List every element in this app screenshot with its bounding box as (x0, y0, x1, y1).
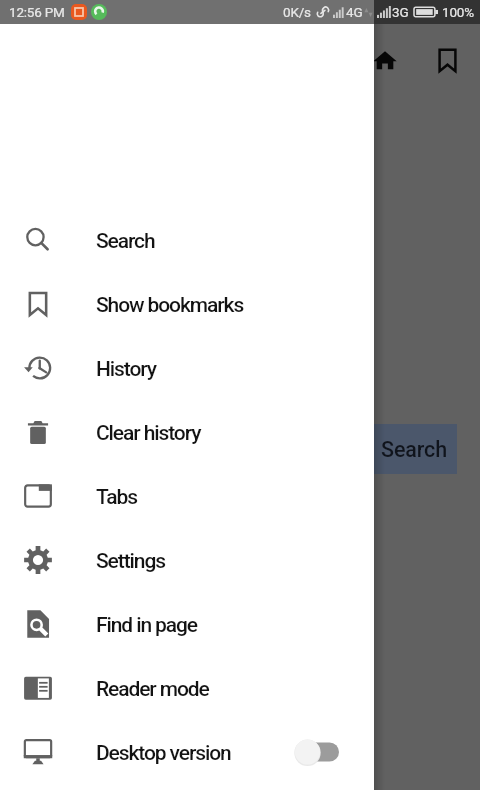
staticText: 0K/s (283, 4, 311, 20)
button[interactable]: Find in page (0, 592, 374, 656)
staticText: Show bookmarks (96, 293, 244, 318)
button[interactable]: Search (0, 208, 374, 272)
staticText: Desktop version (96, 741, 231, 766)
staticText: Settings (96, 549, 165, 574)
button[interactable]: Toggle desktop version (288, 729, 346, 775)
staticText: 3G (392, 4, 409, 20)
button[interactable]: Tabs (0, 464, 374, 528)
button[interactable]: Reader mode (0, 656, 374, 720)
staticText: Reader mode (96, 677, 209, 702)
staticText: Tabs (96, 485, 137, 510)
staticText: 4G (346, 4, 363, 20)
staticText: Search (96, 229, 155, 254)
button[interactable]: Search (366, 424, 457, 474)
staticText: Find in page (96, 613, 197, 638)
button[interactable]: Desktop version (0, 720, 374, 784)
button[interactable]: History (0, 336, 374, 400)
staticText: History (96, 357, 156, 382)
staticText: Search (381, 437, 448, 462)
button[interactable]: Settings (0, 528, 374, 592)
button[interactable]: Show bookmarks (0, 272, 374, 336)
button[interactable]: Home (362, 37, 408, 83)
button[interactable]: Bookmarks (424, 37, 470, 83)
staticText: 100% (442, 4, 474, 20)
staticText: 12:56 PM (9, 4, 65, 20)
button[interactable]: Clear history (0, 400, 374, 464)
staticText: Clear history (96, 421, 201, 446)
